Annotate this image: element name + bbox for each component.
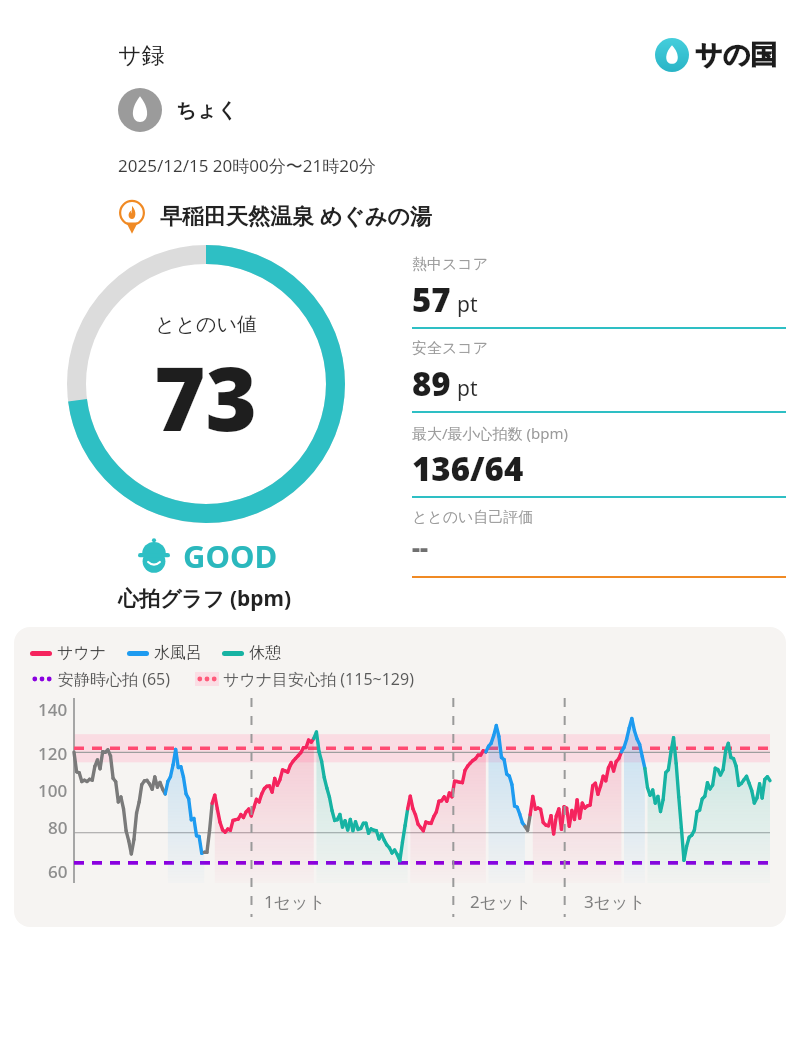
staticText: 100 xyxy=(38,779,68,802)
staticText: 80 xyxy=(48,816,68,839)
staticText: ととのい自己評価 xyxy=(412,508,534,527)
button[interactable]: 熱中スコア xyxy=(412,245,786,329)
staticText: サウナ xyxy=(57,643,107,663)
staticText: 休憩 xyxy=(249,643,281,663)
staticText: 安全スコア xyxy=(412,339,489,358)
staticText: 60 xyxy=(48,860,68,883)
staticText: 57 xyxy=(412,277,451,322)
staticText: サウナ目安心拍 (115~129) xyxy=(223,668,414,690)
staticText: 120 xyxy=(38,742,68,765)
button[interactable]: GOOD xyxy=(135,535,278,577)
staticText: ととのい値 xyxy=(155,312,257,337)
button[interactable]: ちょく xyxy=(118,88,238,132)
staticText: 1セット xyxy=(264,890,326,913)
staticText: 水風呂 xyxy=(154,643,202,663)
staticText: 2セット xyxy=(470,890,532,913)
button[interactable]: ととのい自己評価 xyxy=(412,498,786,578)
staticText: 心拍グラフ (bpm) xyxy=(118,584,292,613)
staticText: 73 xyxy=(154,337,258,457)
staticText: 140 xyxy=(38,698,68,721)
button[interactable]: 早稲田天然温泉 めぐみの湯 xyxy=(114,197,432,233)
staticText: サ録 xyxy=(118,41,165,70)
staticText: 熱中スコア xyxy=(412,255,489,274)
staticText: ちょく xyxy=(176,98,238,123)
staticText: 早稲田天然温泉 めぐみの湯 xyxy=(160,200,432,230)
staticText: 3セット xyxy=(584,890,646,913)
staticText: pt xyxy=(457,290,478,319)
staticText: サの国 xyxy=(695,38,778,72)
button[interactable]: 安全スコア xyxy=(412,329,786,413)
staticText: 最大/最小心拍数 (bpm) xyxy=(412,423,568,443)
button[interactable]: 最大/最小心拍数 (bpm) xyxy=(412,413,786,498)
staticText: 136/64 xyxy=(412,446,524,491)
staticText: -- xyxy=(412,530,428,564)
button[interactable]: サの国 ロゴ xyxy=(655,38,778,72)
staticText: 2025/12/15 20時00分〜21時20分 xyxy=(118,154,376,177)
staticText: 89 xyxy=(412,361,451,406)
staticText: pt xyxy=(457,374,478,403)
staticText: 安静時心拍 (65) xyxy=(58,668,171,690)
staticText: GOOD xyxy=(183,535,278,577)
